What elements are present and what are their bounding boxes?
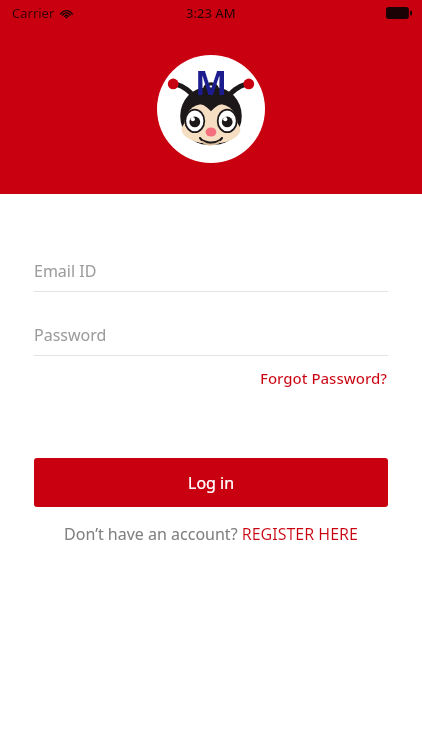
staticText: Email ID [34, 260, 97, 282]
staticText: Password [34, 324, 107, 346]
button[interactable]: Forgot Password? [260, 366, 388, 390]
staticText: Don’t have an account? REGISTER HERE [64, 523, 358, 545]
staticText: 3:23 AM [186, 4, 236, 22]
button[interactable]: Don’t have an account? REGISTER HERE [0, 523, 422, 545]
button[interactable]: Email ID [34, 260, 388, 292]
button[interactable]: Password [34, 324, 388, 356]
staticText: M [195, 59, 228, 105]
staticText: Carrier [12, 4, 55, 22]
staticText: Log in [188, 472, 235, 494]
button[interactable]: Log in [34, 458, 388, 507]
staticText: Forgot Password? [260, 368, 388, 388]
